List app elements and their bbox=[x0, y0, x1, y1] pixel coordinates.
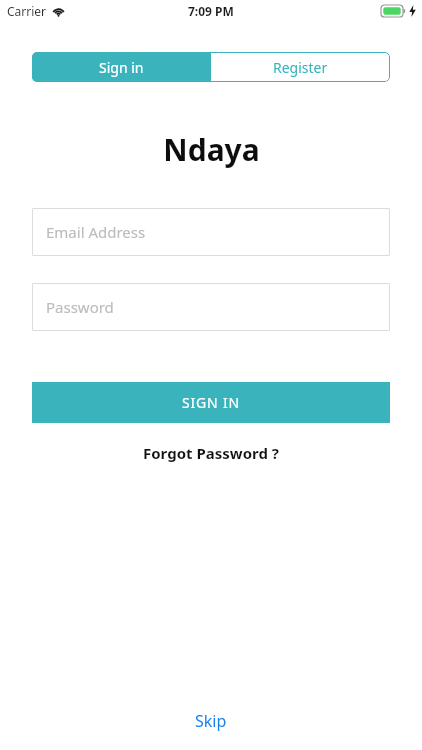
staticText: Sign in bbox=[99, 58, 144, 77]
staticText: Forgot Password ? bbox=[143, 443, 279, 463]
button[interactable]: SIGN IN bbox=[32, 382, 390, 423]
staticText: Ndaya bbox=[163, 129, 260, 170]
staticText: Register bbox=[273, 58, 328, 77]
button[interactable]: Email Address bbox=[32, 208, 390, 256]
button[interactable]: Sign in bbox=[32, 52, 211, 82]
button[interactable]: Forgot Password ? bbox=[133, 439, 289, 467]
button[interactable]: Password bbox=[32, 283, 390, 331]
staticText: SIGN IN bbox=[182, 393, 240, 412]
staticText: Carrier bbox=[7, 3, 47, 19]
staticText: 7:09 PM bbox=[188, 3, 234, 19]
button[interactable]: Skip bbox=[177, 704, 245, 738]
staticText: Password bbox=[46, 297, 114, 317]
staticText: Skip bbox=[195, 710, 227, 732]
staticText: Email Address bbox=[46, 222, 146, 242]
button[interactable]: Register bbox=[211, 52, 390, 82]
